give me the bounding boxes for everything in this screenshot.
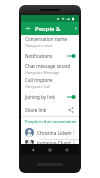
button[interactable]: Recent apps [62, 145, 72, 155]
button[interactable]: More options for Christina Lidwin [72, 128, 76, 137]
staticText: Hangouts meet [25, 43, 53, 48]
button[interactable]: More options for Jordanne Chard [71, 140, 76, 144]
staticText: Notifications [25, 53, 53, 59]
staticText: Chat message sound [25, 63, 71, 69]
staticText: Joining by link [25, 94, 56, 100]
staticText: Share link [25, 107, 47, 113]
staticText: Call ringtone [25, 77, 53, 83]
button[interactable]: Share [65, 104, 76, 115]
button[interactable]: Christina Lidwin [21, 126, 79, 139]
staticText: Hangouts Call [25, 84, 50, 89]
staticText: Christina Lidwin [37, 130, 72, 136]
button[interactable]: Notifications [21, 49, 79, 62]
button[interactable]: Toggle Joining by link [64, 92, 76, 102]
button[interactable]: Home [45, 145, 55, 155]
staticText: People & options [35, 25, 76, 33]
button[interactable]: Back [28, 145, 38, 155]
button[interactable]: Back [24, 24, 33, 33]
button[interactable]: Toggle Notifications [64, 51, 76, 61]
button[interactable]: Joining by link [21, 90, 79, 103]
staticText: Jordanne Chard [37, 140, 71, 144]
staticText: People in this conversation [25, 119, 77, 124]
button[interactable]: Jordanne Chard [21, 140, 79, 144]
button[interactable]: Chat message sound [21, 62, 79, 76]
button[interactable]: Call ringtone [21, 76, 79, 90]
button[interactable]: Share link [21, 103, 79, 116]
staticText: Conversation name [25, 36, 68, 42]
button[interactable]: Conversation name [21, 35, 79, 49]
staticText: Hangouts Message [25, 70, 60, 75]
